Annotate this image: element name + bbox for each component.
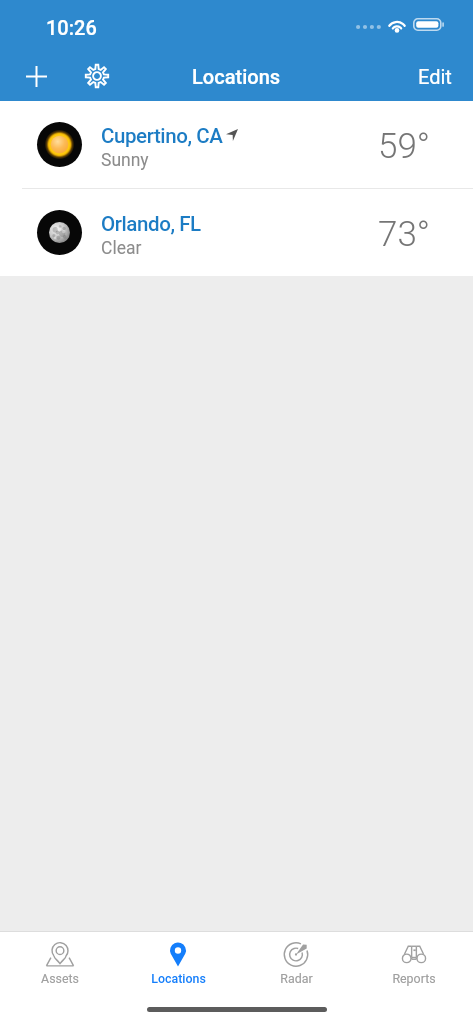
staticText: Radar [280,971,313,986]
staticText: Clear [101,238,142,259]
button[interactable]: Cupertino, CA [0,101,473,188]
staticText: Orlando, FL [101,212,201,236]
staticText: Cupertino, CA [101,124,223,148]
button[interactable]: Add location [14,54,58,98]
staticText: Assets [41,971,79,986]
button[interactable]: Edit [407,54,463,98]
button[interactable]: Reports [355,932,473,993]
staticText: Edit [418,65,452,88]
staticText: Locations [151,971,206,986]
staticText: 10:26 [46,16,97,39]
staticText: Reports [392,971,436,986]
button[interactable]: Orlando, FL [0,189,473,276]
staticText: Locations [192,65,281,88]
button[interactable]: Settings [75,54,119,98]
staticText: 73° [378,214,431,255]
staticText: Sunny [101,150,149,171]
button[interactable]: Locations [119,932,237,993]
button[interactable]: Radar [237,932,355,993]
button[interactable]: Assets [0,932,119,993]
staticText: 59° [378,126,431,167]
